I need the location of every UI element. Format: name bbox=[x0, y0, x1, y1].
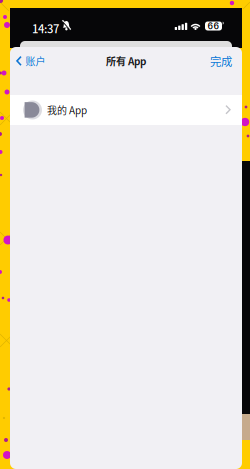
staticText: 14:37 bbox=[32, 20, 59, 36]
button[interactable]: 我的 App bbox=[10, 95, 242, 125]
staticText: 账户 bbox=[25, 54, 45, 68]
staticText: 66 bbox=[207, 21, 219, 31]
staticText: 所有 App bbox=[106, 54, 146, 68]
button[interactable]: 账户 bbox=[10, 47, 66, 75]
staticText: 完成 bbox=[210, 53, 232, 69]
button[interactable]: 完成 bbox=[200, 47, 242, 75]
staticText: 我的 App bbox=[47, 103, 87, 117]
